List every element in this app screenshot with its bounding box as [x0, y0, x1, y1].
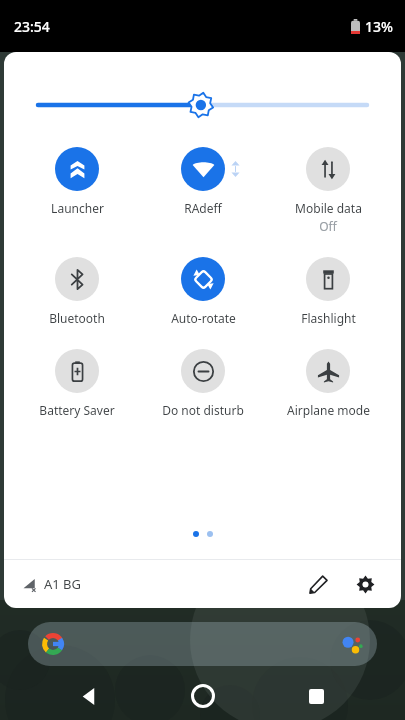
button[interactable]: Flashlight [267, 257, 389, 326]
button[interactable]: Battery Saver [16, 349, 138, 418]
staticText: 13% [365, 17, 393, 36]
button[interactable]: Mobile data [267, 147, 389, 234]
button[interactable]: Back [65, 672, 113, 720]
button[interactable]: Home [179, 672, 227, 720]
staticText: RAdeff [184, 200, 222, 216]
button[interactable]: Auto-rotate [142, 257, 264, 326]
button[interactable]: Do not disturb [142, 349, 264, 418]
staticText: A1 BG [44, 575, 82, 593]
button[interactable]: Recent apps [292, 672, 340, 720]
staticText: Auto-rotate [171, 310, 236, 326]
staticText: Battery Saver [39, 402, 115, 418]
staticText: Bluetooth [49, 310, 105, 326]
button[interactable]: Airplane mode [267, 349, 389, 418]
staticText: Airplane mode [287, 402, 370, 418]
button[interactable]: Settings [345, 564, 385, 604]
button[interactable]: RAdeff [142, 147, 264, 216]
staticText: Do not disturb [162, 402, 244, 418]
button[interactable]: A1 BG [20, 575, 82, 593]
staticText: Mobile data [295, 200, 362, 216]
button[interactable]: Edit [298, 564, 338, 604]
button[interactable]: Launcher [16, 147, 138, 216]
button[interactable]: Google search [28, 622, 377, 666]
staticText: Launcher [51, 200, 104, 216]
staticText: Flashlight [301, 310, 356, 326]
button[interactable]: Bluetooth [16, 257, 138, 326]
staticText: 23:54 [14, 17, 50, 36]
button[interactable]: Brightness [4, 90, 401, 120]
staticText: Off [319, 218, 337, 234]
